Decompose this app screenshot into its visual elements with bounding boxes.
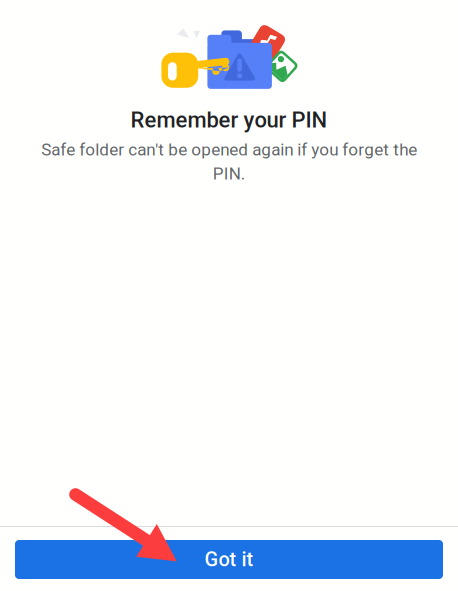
staticText: Got it — [204, 548, 253, 571]
staticText: Remember your PIN — [130, 107, 327, 133]
button[interactable]: Got it — [15, 540, 443, 579]
staticText: Safe folder can't be opened again if you… — [41, 140, 417, 184]
